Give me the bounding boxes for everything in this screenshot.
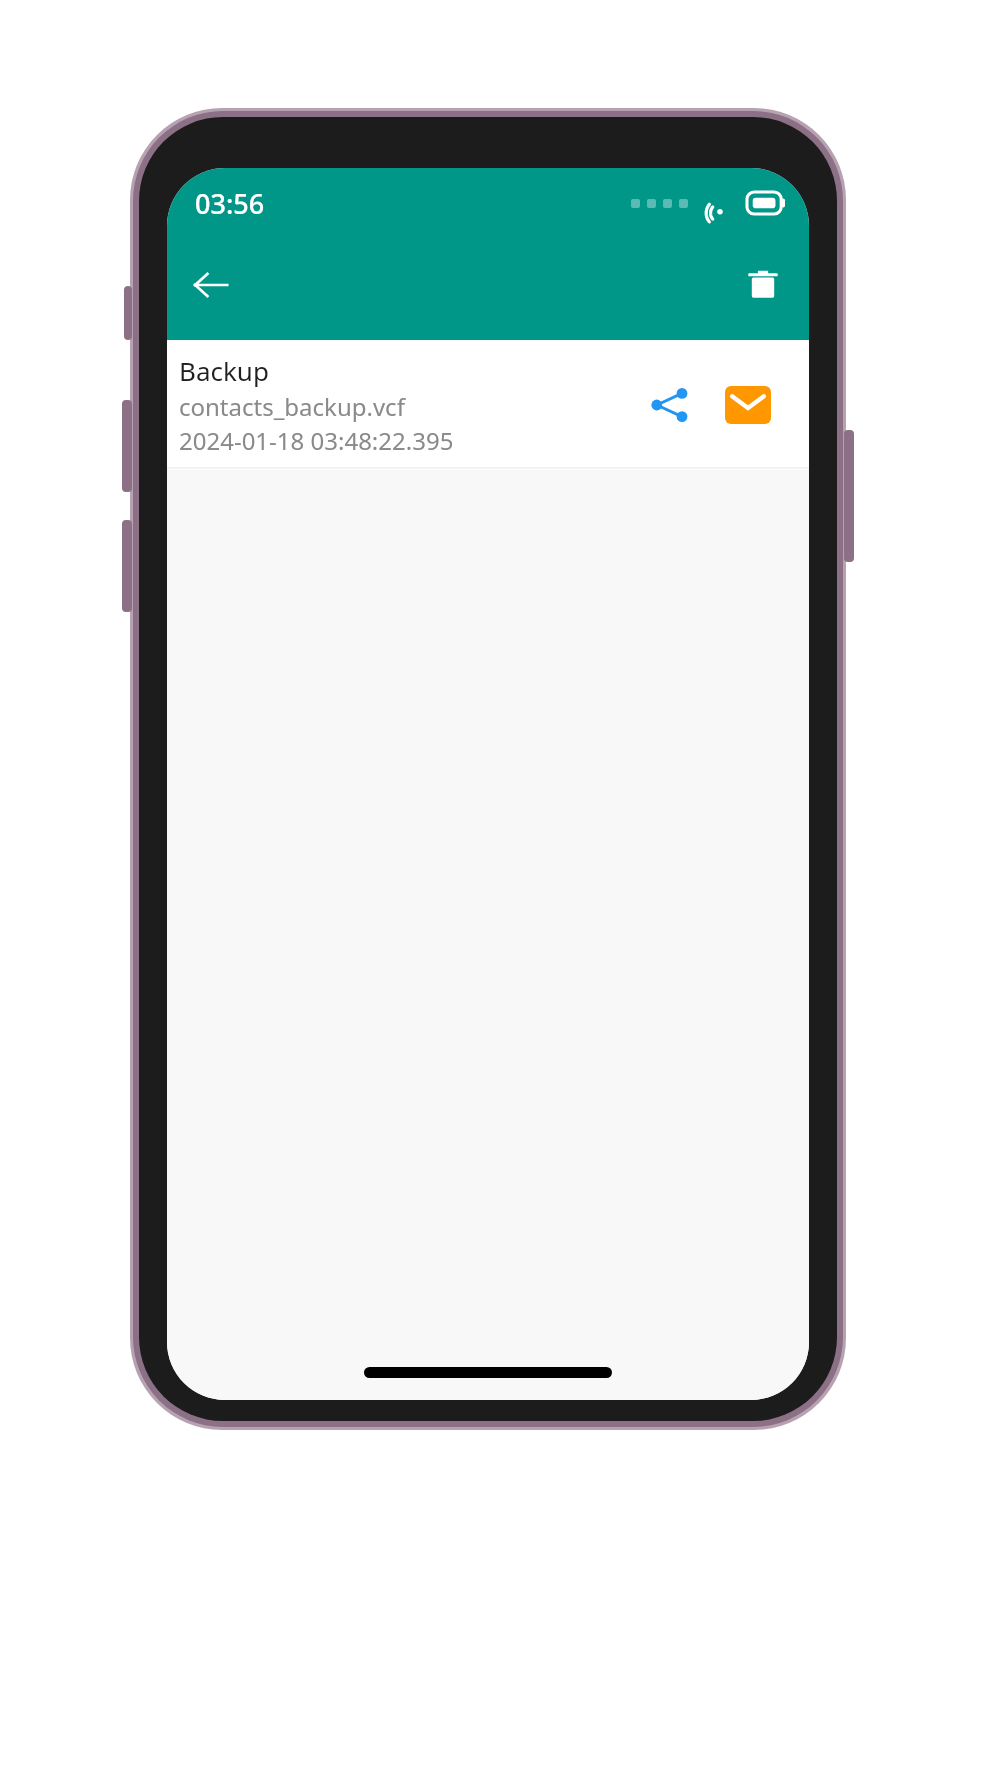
staticText: 03:56: [195, 185, 265, 222]
button[interactable]: Delete: [731, 253, 795, 317]
staticText: contacts_backup.vcf: [179, 390, 405, 423]
staticText: 2024-01-18 03:48:22.395: [179, 424, 454, 457]
button[interactable]: Backup: [167, 340, 809, 470]
button[interactable]: Share: [633, 368, 707, 442]
button[interactable]: Back: [179, 253, 243, 317]
staticText: Backup: [179, 353, 269, 388]
button[interactable]: Send by email: [711, 368, 785, 442]
